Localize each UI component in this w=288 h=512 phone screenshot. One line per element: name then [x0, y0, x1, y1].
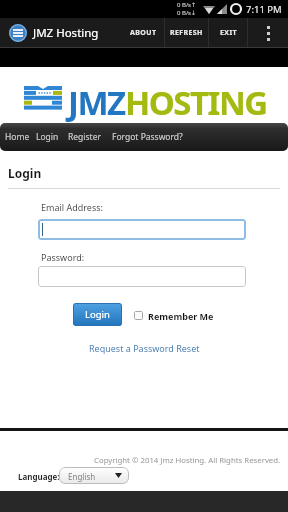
staticText: ABOUT: [130, 28, 157, 38]
button[interactable]: Login: [36, 123, 59, 151]
staticText: 7:11 PM: [246, 3, 282, 16]
button[interactable]: Forgot Password?: [112, 123, 183, 151]
staticText: Copyright © 2014 Jmz Hosting. All Rights…: [94, 455, 281, 466]
button[interactable]: EXIT: [209, 18, 247, 48]
button[interactable]: [38, 266, 246, 287]
staticText: JMZ: [68, 80, 125, 125]
staticText: Email Address:: [41, 201, 103, 213]
staticText: Login: [8, 165, 42, 181]
button[interactable]: ABOUT: [122, 18, 164, 48]
staticText: Home: [5, 131, 30, 143]
staticText: Remember Me: [148, 310, 214, 322]
button[interactable]: [38, 219, 246, 240]
staticText: Forgot Password?: [112, 131, 183, 143]
button[interactable]: Remember Me: [134, 308, 214, 323]
staticText: 0 B/s↑: [177, 1, 197, 9]
staticText: 0 B/s↓: [177, 9, 197, 17]
staticText: EXIT: [220, 28, 237, 38]
button[interactable]: Register: [68, 123, 101, 151]
staticText: Register: [68, 131, 101, 143]
staticText: REFRESH: [170, 28, 203, 38]
button[interactable]: Request a Password Reset: [89, 342, 200, 354]
staticText: Login: [85, 308, 110, 321]
button[interactable]: Home: [5, 123, 30, 151]
button[interactable]: English: [59, 467, 129, 484]
staticText: English: [68, 471, 96, 482]
button[interactable]: Login: [73, 303, 122, 326]
staticText: Language:: [18, 471, 60, 482]
button[interactable]: REFRESH: [165, 18, 208, 48]
button[interactable]: [248, 18, 288, 48]
staticText: JMZ Hosting: [33, 25, 99, 41]
staticText: HOSTING: [125, 80, 267, 125]
staticText: Login: [36, 131, 59, 143]
staticText: Password:: [41, 251, 85, 263]
